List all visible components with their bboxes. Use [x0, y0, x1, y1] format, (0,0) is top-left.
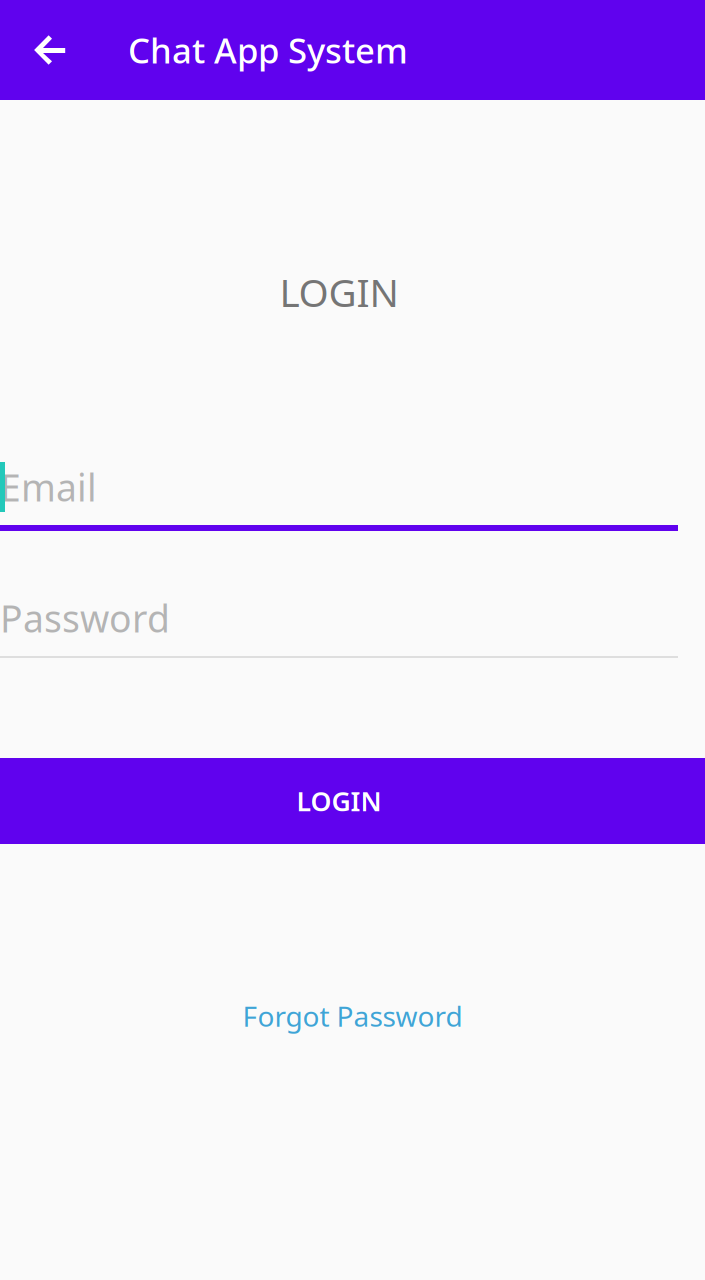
staticText: Chat App System	[128, 27, 408, 73]
staticText: Email	[0, 462, 97, 512]
button[interactable]: Password	[0, 588, 705, 658]
button[interactable]: Email	[0, 457, 705, 531]
staticText: Forgot Password	[242, 997, 462, 1035]
staticText: LOGIN	[296, 783, 381, 819]
staticText: LOGIN	[279, 266, 398, 318]
button[interactable]: Forgot Password	[0, 986, 705, 1046]
button[interactable]: Back	[0, 0, 100, 100]
button[interactable]: LOGIN	[0, 758, 705, 844]
staticText: Password	[0, 593, 170, 643]
